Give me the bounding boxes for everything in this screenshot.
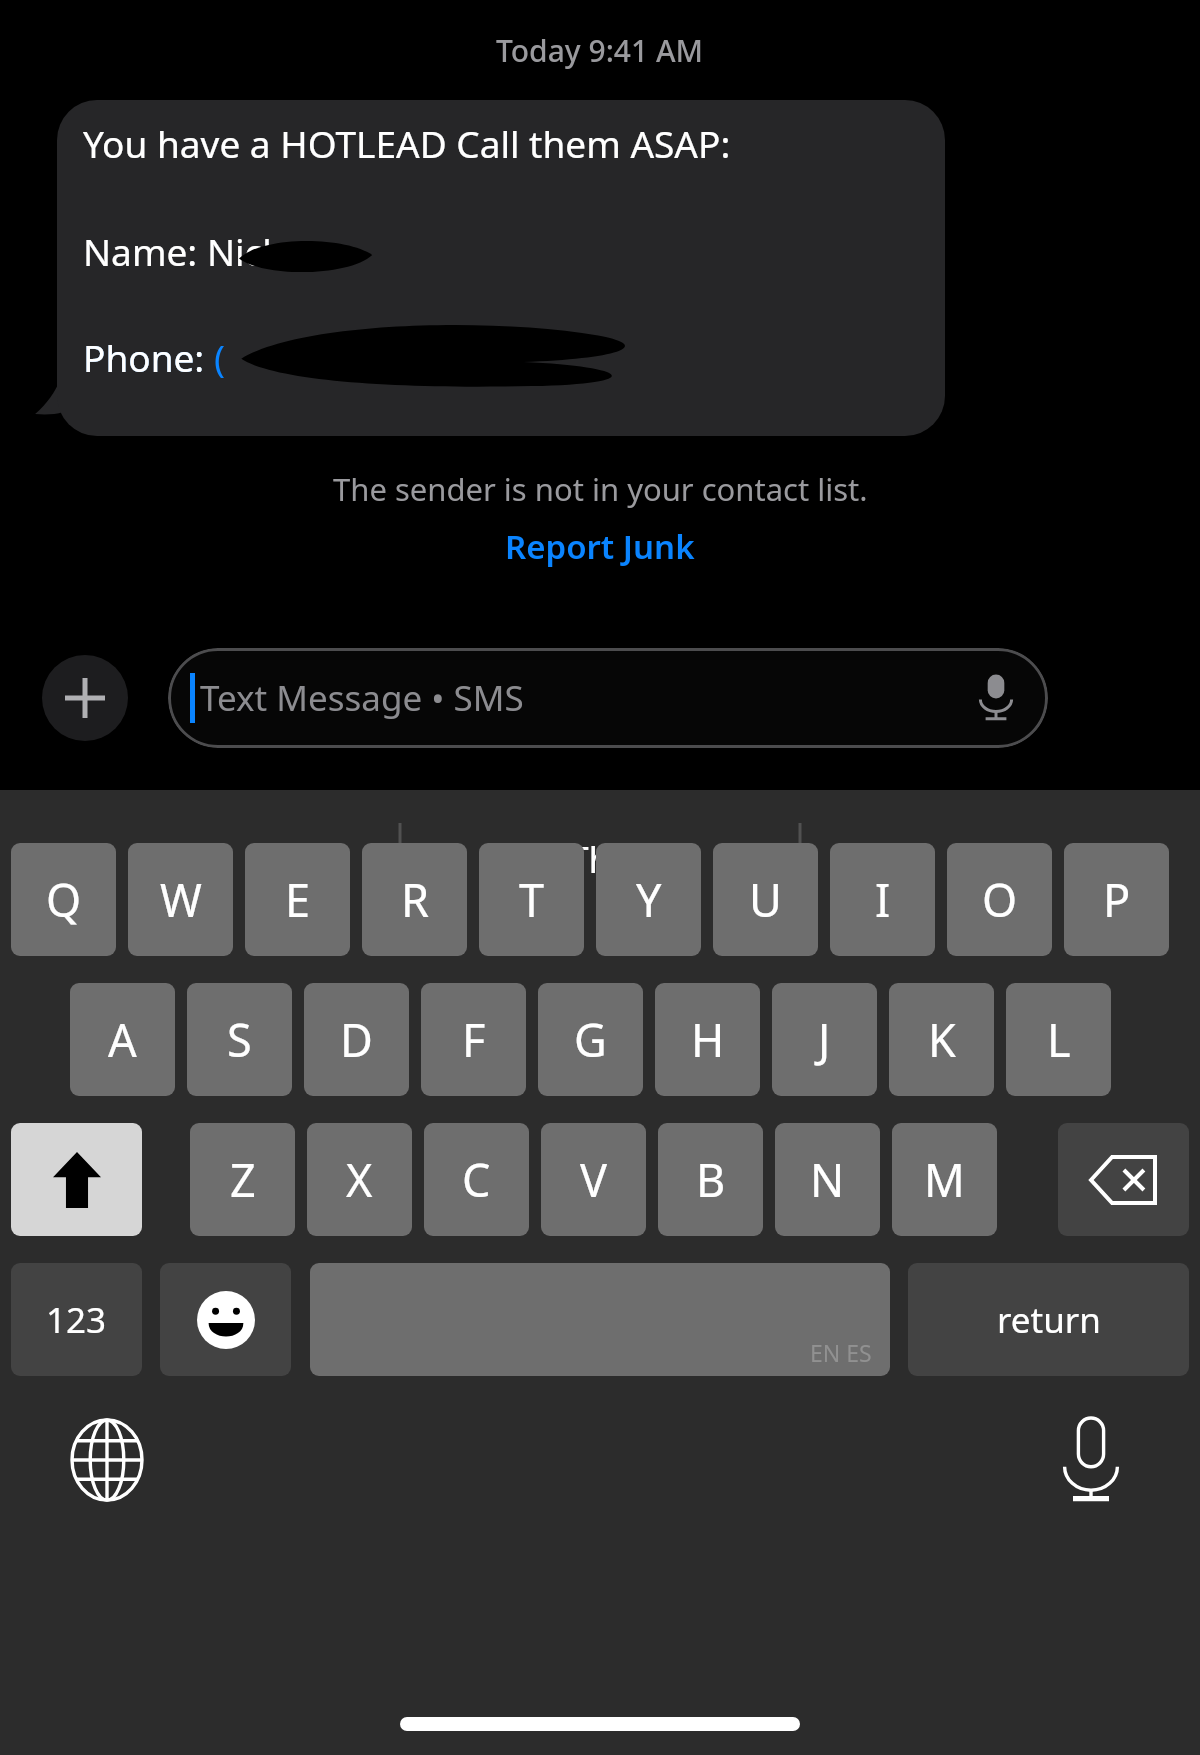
staticText: R bbox=[401, 869, 429, 930]
staticText: Today 9:41 AM bbox=[496, 30, 704, 71]
button[interactable]: K bbox=[889, 983, 994, 1096]
staticText: Report Junk bbox=[505, 524, 695, 569]
staticText: S bbox=[227, 1009, 252, 1070]
button[interactable]: L bbox=[1006, 983, 1111, 1096]
staticText: T bbox=[519, 869, 545, 930]
button[interactable]: H bbox=[655, 983, 760, 1096]
staticText: F bbox=[462, 1009, 486, 1070]
staticText: H bbox=[691, 1009, 725, 1070]
staticText: You have a HOTLEAD Call them ASAP: bbox=[83, 118, 731, 168]
button[interactable]: C bbox=[424, 1123, 529, 1236]
staticText: N bbox=[810, 1149, 845, 1210]
staticText: X bbox=[346, 1149, 373, 1210]
staticText: J bbox=[818, 1009, 831, 1070]
staticText: EN ES bbox=[810, 1337, 872, 1368]
staticText: B bbox=[696, 1149, 726, 1210]
button[interactable]: Dictation bbox=[1046, 1415, 1136, 1505]
button[interactable]: E bbox=[245, 843, 350, 956]
button[interactable]: Space bbox=[310, 1263, 890, 1376]
staticText: Text Message • SMS bbox=[200, 674, 524, 722]
button[interactable]: I'm bbox=[800, 800, 1200, 915]
button[interactable]: M bbox=[892, 1123, 997, 1236]
staticText: D bbox=[340, 1009, 373, 1070]
button[interactable]: Backspace bbox=[1058, 1123, 1189, 1236]
button[interactable]: X bbox=[307, 1123, 412, 1236]
button[interactable]: Y bbox=[596, 843, 701, 956]
button[interactable]: Change keyboard bbox=[62, 1415, 152, 1505]
staticText: The sender is not in your contact list. bbox=[333, 468, 868, 510]
staticText: Q bbox=[46, 869, 82, 930]
staticText: Name: Nick bbox=[83, 226, 283, 276]
staticText: G bbox=[574, 1009, 607, 1070]
button[interactable]: Z bbox=[190, 1123, 295, 1236]
button[interactable]: Dictate message bbox=[970, 672, 1022, 724]
button[interactable]: A bbox=[70, 983, 175, 1096]
staticText: Phone: bbox=[83, 332, 205, 382]
button[interactable]: I bbox=[0, 800, 400, 915]
staticText: I bbox=[194, 833, 207, 883]
button[interactable]: P bbox=[1064, 843, 1169, 956]
button[interactable]: W bbox=[128, 843, 233, 956]
button[interactable]: Text Message • SMS bbox=[168, 648, 1048, 748]
staticText: P bbox=[1103, 869, 1131, 930]
button[interactable]: You have a HOTLEAD Call them ASAP: bbox=[57, 100, 945, 436]
button[interactable]: R bbox=[362, 843, 467, 956]
button[interactable]: V bbox=[541, 1123, 646, 1236]
staticText: K bbox=[928, 1009, 956, 1070]
staticText: M bbox=[924, 1149, 965, 1210]
button[interactable]: B bbox=[658, 1123, 763, 1236]
staticText: The bbox=[568, 833, 633, 883]
staticText: C bbox=[462, 1149, 491, 1210]
staticText: L bbox=[1047, 1009, 1071, 1070]
button[interactable]: 123 bbox=[11, 1263, 142, 1376]
staticText: I bbox=[875, 869, 891, 930]
staticText: A bbox=[108, 1009, 137, 1070]
staticText: W bbox=[160, 869, 202, 930]
button[interactable]: Add attachment bbox=[42, 655, 128, 741]
staticText: 123 bbox=[46, 1296, 107, 1344]
button[interactable]: N bbox=[775, 1123, 880, 1236]
button[interactable]: Shift bbox=[11, 1123, 142, 1236]
staticText: E bbox=[285, 869, 311, 930]
button[interactable]: T bbox=[479, 843, 584, 956]
staticText: Z bbox=[230, 1149, 256, 1210]
button[interactable]: U bbox=[713, 843, 818, 956]
button[interactable]: J bbox=[772, 983, 877, 1096]
button[interactable]: Report Junk bbox=[495, 522, 705, 571]
button[interactable]: return bbox=[908, 1263, 1189, 1376]
staticText: V bbox=[580, 1149, 608, 1210]
staticText: U bbox=[749, 869, 782, 930]
button[interactable]: The bbox=[400, 800, 800, 915]
staticText: I'm bbox=[973, 833, 1028, 883]
button[interactable]: G bbox=[538, 983, 643, 1096]
button[interactable]: Emoji bbox=[160, 1263, 291, 1376]
button[interactable]: S bbox=[187, 983, 292, 1096]
button[interactable]: D bbox=[304, 983, 409, 1096]
staticText: O bbox=[982, 869, 1018, 930]
button[interactable]: Q bbox=[11, 843, 116, 956]
button[interactable]: I bbox=[830, 843, 935, 956]
staticText: return bbox=[997, 1296, 1101, 1344]
button[interactable]: O bbox=[947, 843, 1052, 956]
button[interactable]: F bbox=[421, 983, 526, 1096]
staticText: Y bbox=[636, 869, 662, 930]
staticText: Phone: ( bbox=[83, 332, 226, 382]
